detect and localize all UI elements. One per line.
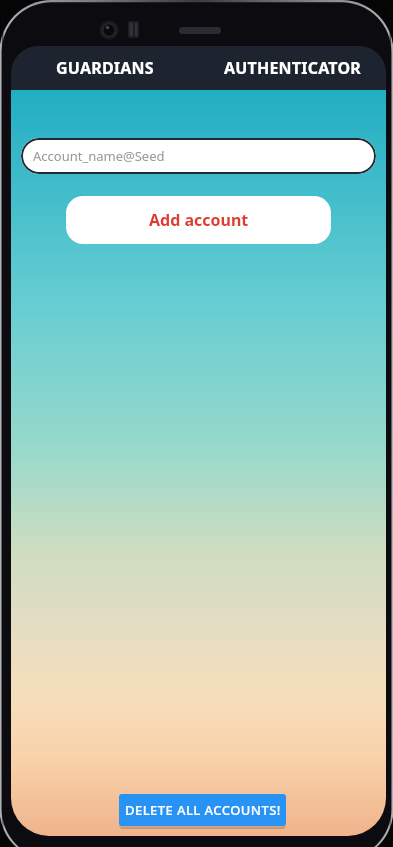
staticText: Account_name@Seed	[33, 147, 165, 165]
button[interactable]: AUTHENTICATOR	[198, 46, 386, 90]
button[interactable]: DELETE ALL ACCOUNTS!	[119, 794, 286, 826]
staticText: AUTHENTICATOR	[224, 57, 361, 79]
staticText: Add account	[149, 209, 249, 231]
button[interactable]: GUARDIANS	[11, 46, 198, 90]
staticText: DELETE ALL ACCOUNTS!	[125, 801, 281, 819]
staticText: GUARDIANS	[56, 57, 154, 79]
button[interactable]: Account_name@Seed	[21, 138, 376, 174]
button[interactable]: Add account	[66, 196, 331, 244]
